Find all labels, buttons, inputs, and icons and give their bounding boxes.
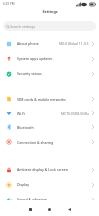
staticText: Bluetooth xyxy=(17,125,34,130)
staticText: Settings xyxy=(42,9,58,14)
staticText: Wi-Fi xyxy=(17,111,26,116)
staticText: Ambient display & Lock screen xyxy=(17,167,68,172)
staticText: System apps updater xyxy=(17,56,53,61)
staticText: Display xyxy=(17,182,30,187)
button[interactable]: Wi-Fi xyxy=(0,106,99,120)
staticText: 6:29 PM xyxy=(3,2,15,6)
staticText: MCTV-ESIM-5GHz xyxy=(61,111,89,116)
button[interactable]: Security status xyxy=(0,66,99,81)
staticText: Security status xyxy=(17,71,42,76)
button[interactable]: Ambient display & Lock screen xyxy=(0,162,99,177)
button[interactable]: Bluetooth xyxy=(0,120,99,134)
button[interactable]: SIM cards & mobile networks xyxy=(0,92,99,106)
button[interactable]: Back xyxy=(64,204,74,214)
staticText: Sound & vibration xyxy=(17,197,48,202)
staticText: About phone xyxy=(17,41,39,46)
button[interactable]: Display xyxy=(0,177,99,192)
staticText: Search settings xyxy=(10,24,36,29)
button[interactable]: System apps updater xyxy=(0,51,99,66)
button[interactable]: Connection & sharing xyxy=(0,134,99,150)
button[interactable]: Sound & vibration xyxy=(0,192,99,207)
staticText: Connection & sharing xyxy=(17,140,54,145)
button[interactable]: Home xyxy=(44,204,54,214)
button[interactable]: About phone xyxy=(0,36,99,51)
staticText: SIM cards & mobile networks xyxy=(17,97,66,102)
button[interactable]: Recents xyxy=(25,204,35,214)
staticText: MIUI Global 11.0.3 xyxy=(59,41,89,46)
button[interactable]: Search settings xyxy=(3,21,96,31)
